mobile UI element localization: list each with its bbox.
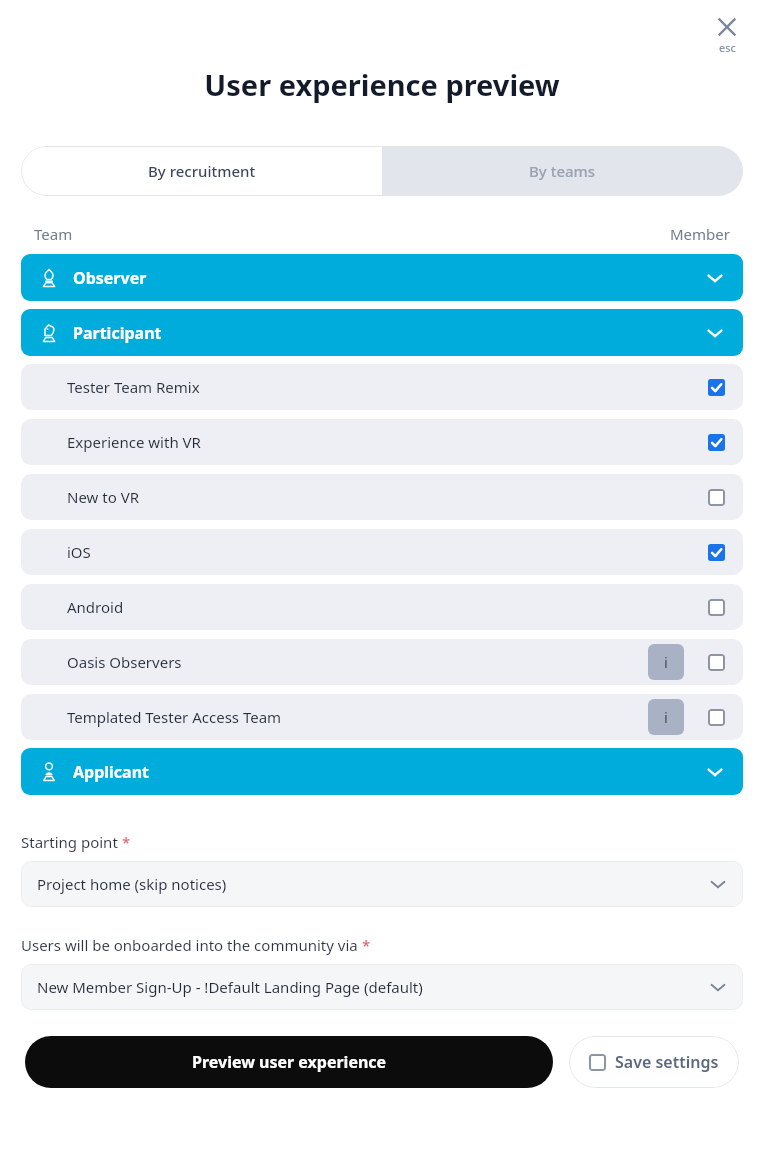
staticText: Member (670, 224, 730, 244)
staticText: Participant (73, 322, 162, 344)
button[interactable]: New to VR (21, 474, 743, 520)
button[interactable]: Preview user experience (25, 1036, 553, 1088)
button[interactable]: Project home (skip notices) (21, 861, 743, 907)
button[interactable]: By teams (382, 146, 743, 196)
button[interactable]: By recruitment (21, 146, 382, 196)
staticText: Tester Team Remix (67, 377, 200, 397)
staticText: Team (34, 224, 73, 244)
staticText: Applicant (73, 761, 150, 783)
staticText: iOS (67, 542, 91, 562)
staticText: New to VR (67, 487, 139, 507)
button[interactable]: Save settings (569, 1036, 739, 1088)
button[interactable]: Experience with VR (21, 419, 743, 465)
staticText: New Member Sign-Up - !Default Landing Pa… (37, 977, 423, 997)
button[interactable]: Info (648, 644, 684, 680)
button[interactable]: Participant (21, 309, 743, 356)
button[interactable]: Tester Team Remix (21, 364, 743, 410)
staticText: Project home (skip notices) (37, 874, 227, 894)
staticText: Preview user experience (192, 1051, 387, 1073)
staticText: By teams (529, 161, 596, 181)
staticText: Observer (73, 267, 147, 289)
staticText: * (122, 832, 131, 852)
button[interactable]: Templated Tester Access Team (21, 694, 743, 740)
staticText: By recruitment (148, 161, 256, 181)
button[interactable]: Close (710, 14, 744, 57)
button[interactable]: Applicant (21, 748, 743, 795)
staticText: Oasis Observers (67, 652, 182, 672)
staticText: Users will be onboarded into the communi… (21, 935, 358, 955)
staticText: i (664, 652, 668, 672)
button[interactable]: Oasis Observers (21, 639, 743, 685)
staticText: i (664, 707, 668, 727)
staticText: esc (719, 40, 736, 55)
button[interactable]: Android (21, 584, 743, 630)
staticText: Starting point (21, 832, 118, 852)
button[interactable]: Observer (21, 254, 743, 301)
staticText: User experience preview (0, 65, 764, 104)
button[interactable]: New Member Sign-Up - !Default Landing Pa… (21, 964, 743, 1010)
staticText: Experience with VR (67, 432, 201, 452)
button[interactable]: iOS (21, 529, 743, 575)
staticText: Android (67, 597, 124, 617)
staticText: * (362, 935, 371, 955)
staticText: Save settings (615, 1051, 719, 1073)
button[interactable]: Info (648, 699, 684, 735)
staticText: Templated Tester Access Team (67, 707, 282, 727)
